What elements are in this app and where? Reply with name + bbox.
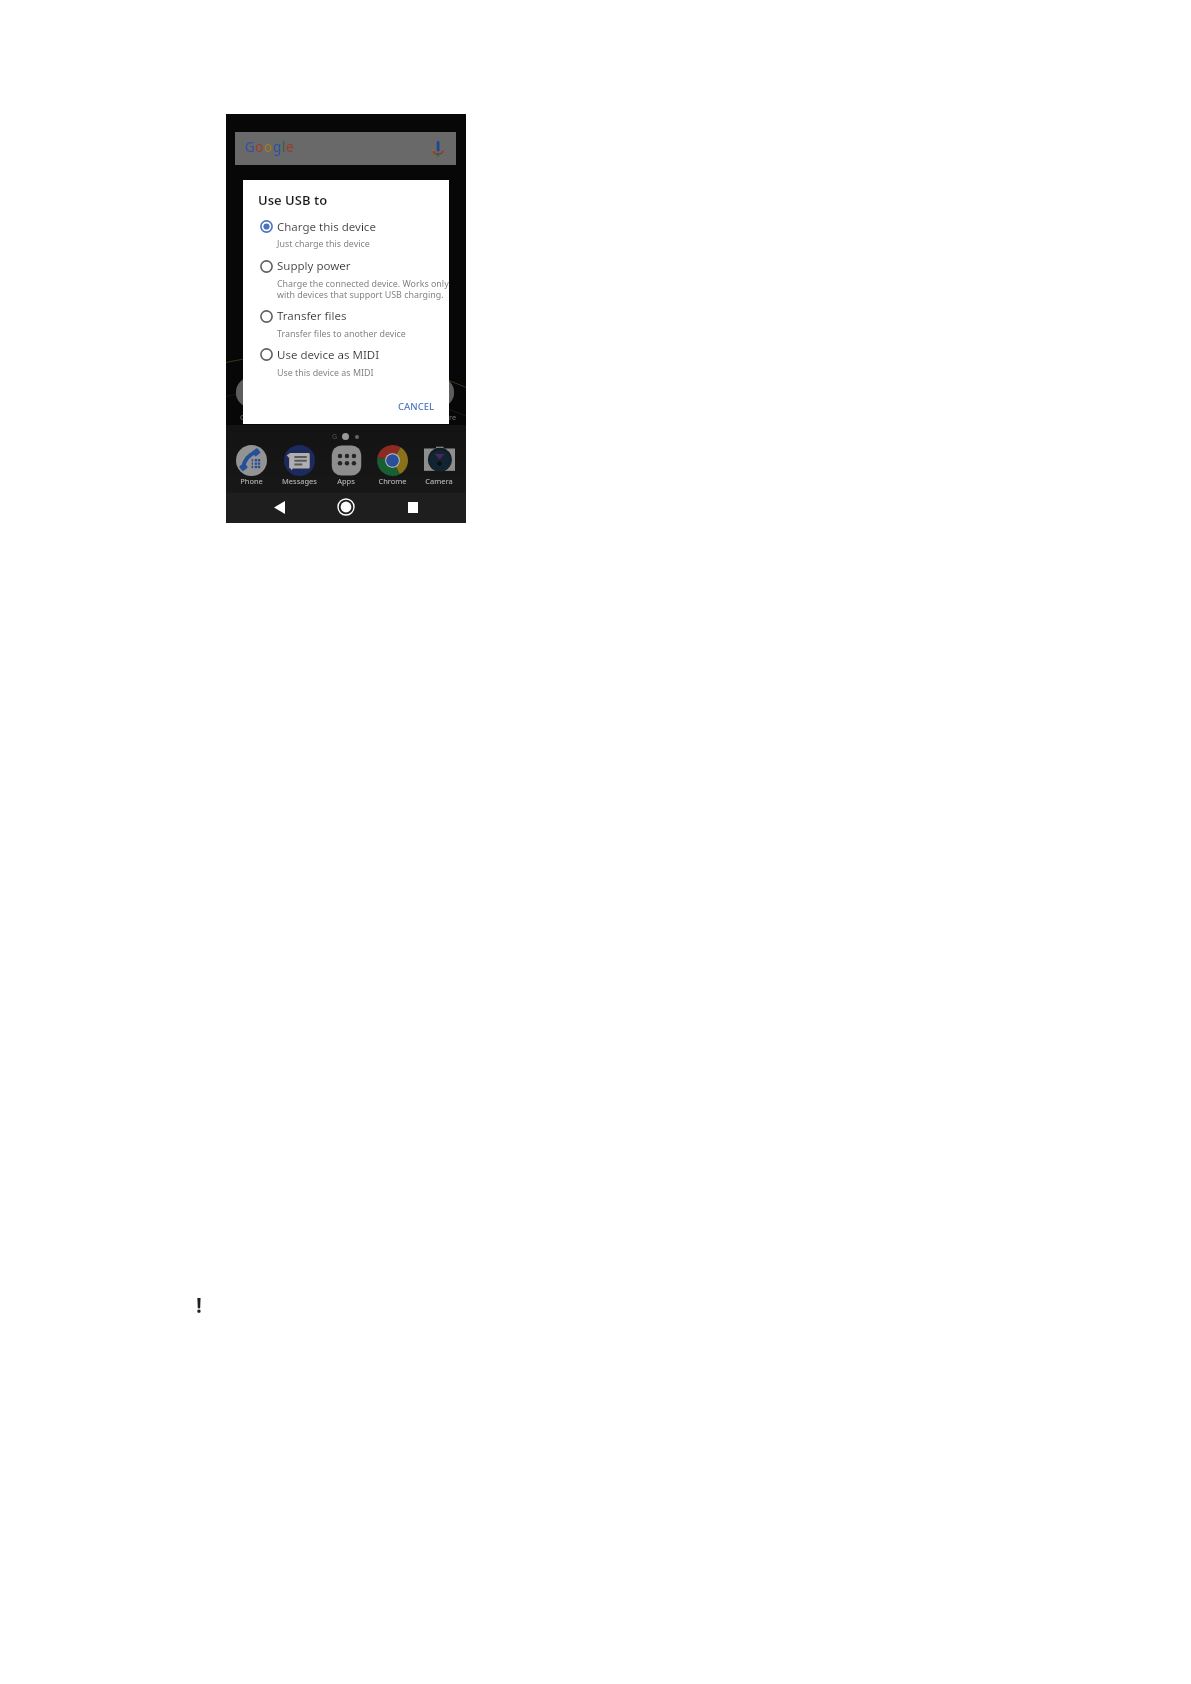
staticText: g — [273, 137, 282, 156]
staticText: Camera — [425, 476, 453, 486]
button[interactable]: Google search — [235, 132, 456, 165]
staticText: Apps — [337, 476, 355, 486]
button[interactable]: Home — [332, 493, 360, 521]
button[interactable] — [251, 343, 441, 376]
staticText: Transfer files — [277, 308, 347, 324]
other: Voice search — [433, 141, 443, 157]
button[interactable]: Chrome — [370, 442, 414, 487]
staticText: G — [245, 137, 255, 156]
staticText: l — [282, 137, 286, 156]
staticText: Charge this device — [277, 219, 376, 235]
staticText: o — [255, 137, 264, 156]
staticText: Transfer files to another device — [277, 327, 406, 339]
staticText: G — [332, 432, 338, 442]
staticText: e — [286, 137, 294, 156]
staticText: re — [449, 412, 457, 422]
staticText: Use USB to — [258, 191, 328, 209]
button[interactable] — [251, 254, 441, 298]
staticText: Charge the connected device. Works only — [277, 277, 449, 289]
staticText: Chrome — [378, 476, 407, 486]
staticText: Messages — [282, 476, 317, 486]
button[interactable]: Messages — [277, 442, 321, 487]
staticText: Supply power — [277, 258, 351, 274]
staticText: ! — [196, 1291, 202, 1320]
button[interactable]: Back — [265, 493, 293, 521]
button[interactable]: Phone — [229, 442, 273, 487]
staticText: G — [240, 412, 246, 422]
button[interactable]: Camera — [417, 442, 461, 487]
button[interactable]: Recent apps — [399, 493, 427, 521]
button[interactable] — [251, 304, 441, 337]
button[interactable] — [251, 215, 441, 248]
staticText: Use device as MIDI — [277, 347, 380, 363]
button[interactable]: Apps — [324, 442, 368, 487]
staticText: Phone — [240, 476, 263, 486]
staticText: Use this device as MIDI — [277, 366, 374, 378]
staticText: o — [264, 137, 273, 156]
staticText: with devices that support USB charging. — [277, 288, 444, 300]
staticText: CANCEL — [398, 400, 435, 413]
staticText: Just charge this device — [277, 237, 370, 249]
button[interactable]: CANCEL — [390, 394, 427, 407]
